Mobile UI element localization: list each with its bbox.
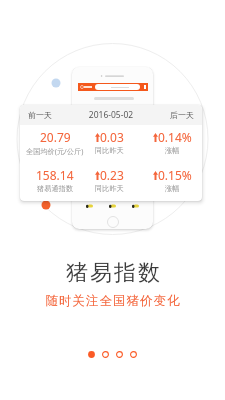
staticText: 0.14%	[158, 129, 192, 145]
staticText: 同比昨天	[95, 184, 124, 193]
staticText: 全国均价(元/公斤)	[26, 146, 84, 156]
staticText: 0.23	[100, 167, 124, 183]
staticText: 随时关注全国猪价变化	[45, 293, 180, 309]
button[interactable]: 0.14%	[132, 129, 202, 155]
button[interactable]: Page 4	[130, 351, 137, 358]
button[interactable]: 0.15%	[132, 167, 202, 193]
button[interactable]: 20.79	[20, 129, 95, 156]
staticText: 猪易通指数	[37, 184, 73, 193]
staticText: 同比昨天	[95, 146, 124, 155]
staticText: 2016-05-02	[52, 109, 170, 121]
staticText: 0.15%	[158, 167, 192, 183]
button[interactable]: 0.03	[69, 129, 149, 155]
staticText: 猪易指数	[65, 259, 161, 287]
button[interactable]: 前一天	[28, 110, 52, 120]
button[interactable]: 后一天	[170, 110, 194, 120]
staticText: 涨幅	[165, 184, 180, 193]
button[interactable]: Page 1	[88, 351, 95, 358]
staticText: 涨幅	[165, 146, 180, 155]
staticText: 0.03	[100, 129, 124, 145]
button[interactable]: Page 3	[116, 351, 123, 358]
button[interactable]: 0.23	[69, 167, 149, 193]
button[interactable]: Page 2	[102, 351, 109, 358]
staticText: 158.14	[36, 167, 74, 183]
staticText: 20.79	[40, 129, 71, 145]
button[interactable]: 158.14	[20, 167, 95, 193]
